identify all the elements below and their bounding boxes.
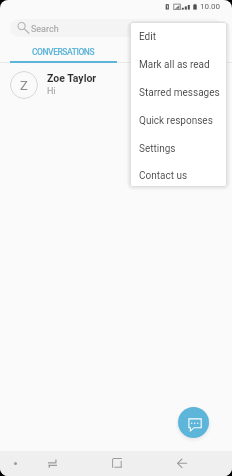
staticText: Zoe Taylor <box>47 72 97 84</box>
button[interactable]: Z <box>0 66 232 103</box>
staticText: Hi <box>47 86 56 97</box>
staticText: Contact us <box>139 170 188 182</box>
button[interactable]: Search <box>10 19 222 37</box>
button[interactable]: Settings <box>130 135 227 163</box>
button[interactable]: Recents <box>41 452 63 474</box>
staticText: 10.00 <box>200 2 221 11</box>
button[interactable]: Home <box>106 452 128 474</box>
button[interactable]: Contact us <box>130 162 227 187</box>
staticText: Search <box>31 24 59 35</box>
staticText: CONVERSATIONS <box>32 47 95 57</box>
staticText: Mark all as read <box>139 59 210 71</box>
staticText: Starred messages <box>139 87 220 99</box>
staticText: Quick responses <box>139 115 213 127</box>
staticText: Edit <box>139 31 156 43</box>
button[interactable]: New conversation <box>178 407 209 438</box>
button[interactable]: Quick responses <box>130 107 227 135</box>
button[interactable]: CONVERSATIONS <box>10 47 117 65</box>
staticText: Z <box>20 78 28 93</box>
button[interactable]: Back <box>171 452 193 474</box>
button[interactable]: Edit <box>130 23 227 51</box>
button[interactable]: Mark all as read <box>130 51 227 79</box>
staticText: Settings <box>139 143 176 155</box>
button[interactable]: Starred messages <box>130 79 227 107</box>
